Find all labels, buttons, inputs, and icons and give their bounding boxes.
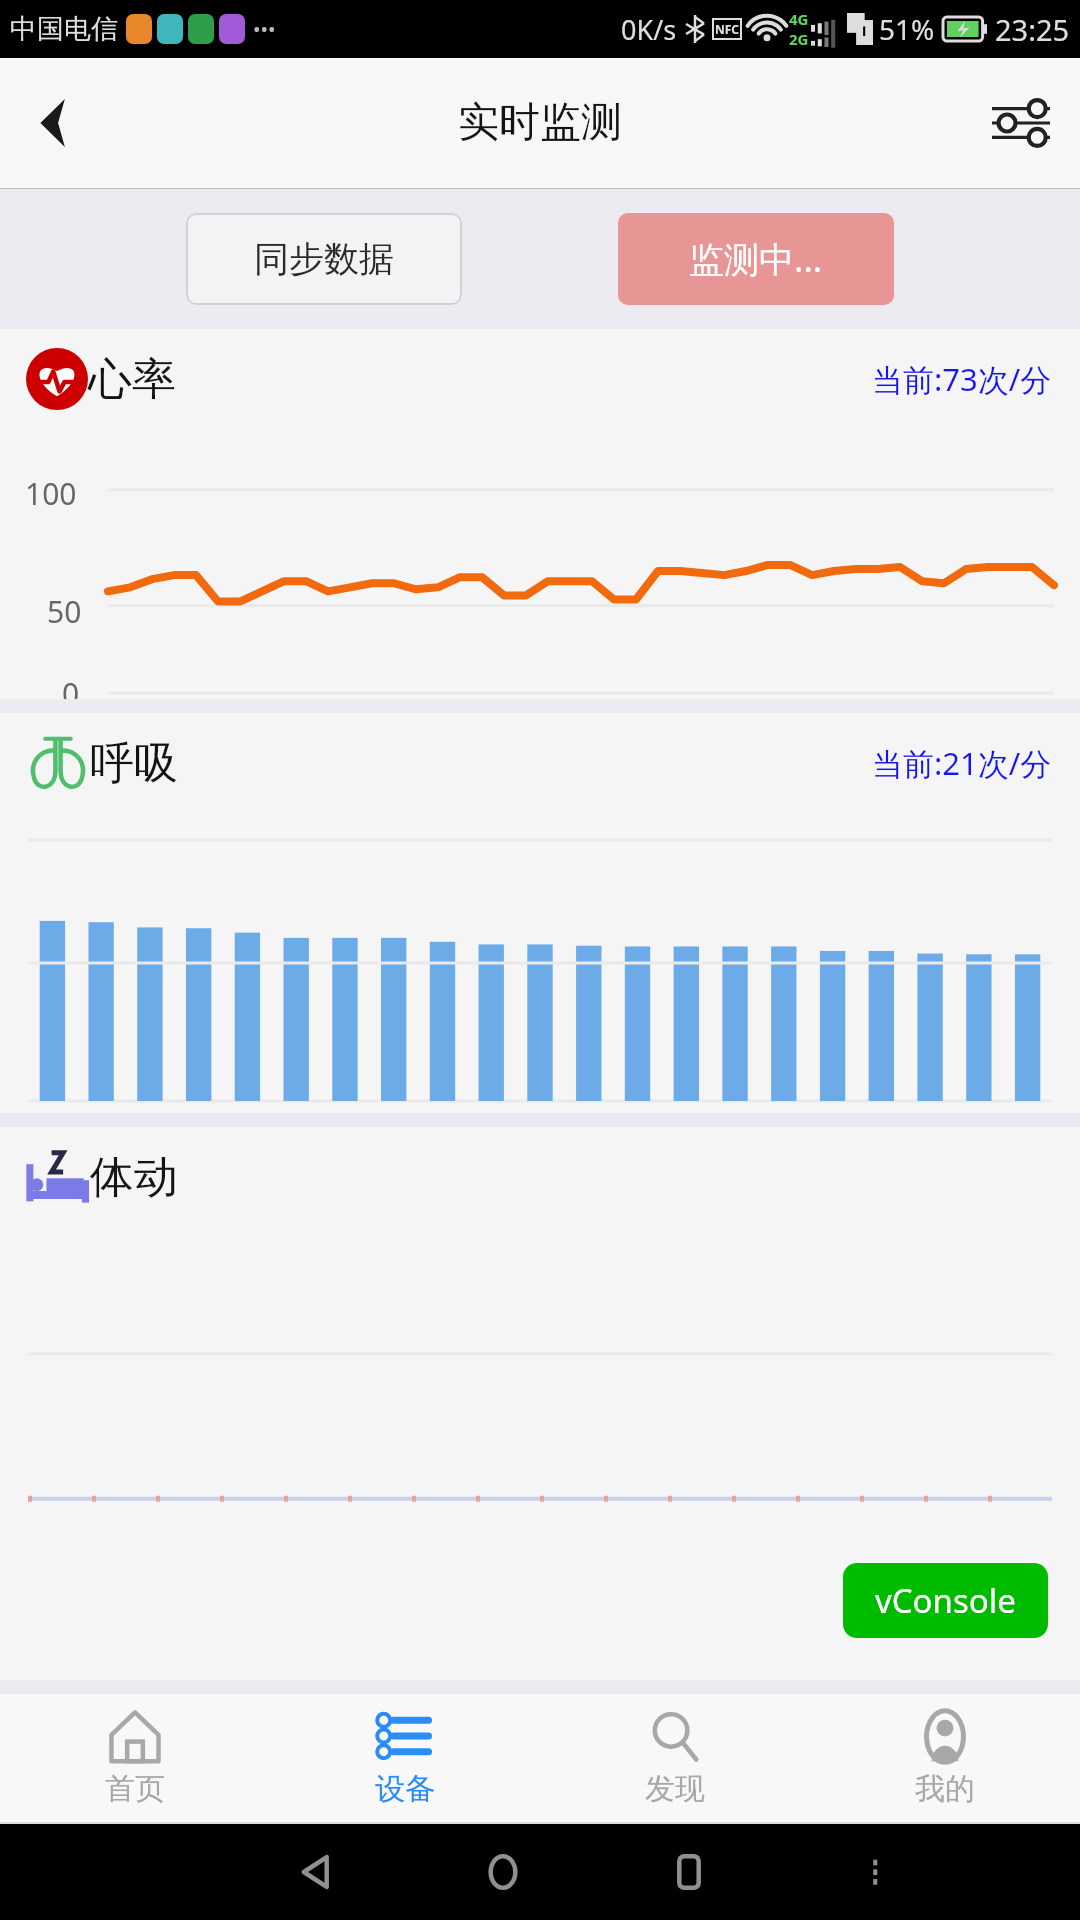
staticText: 实时监测 (458, 97, 622, 149)
staticText: 23:25 (995, 10, 1070, 49)
staticText: NFC (715, 21, 740, 37)
staticText: 监测中... (689, 235, 823, 283)
staticText: 2G (789, 29, 809, 49)
staticText: 当前:73次/分 (872, 358, 1052, 400)
button[interactable]: 首页 (0, 1694, 270, 1822)
button[interactable]: 监测中... (618, 213, 894, 305)
button[interactable]: Recents (596, 1824, 782, 1920)
button[interactable]: Home (410, 1824, 596, 1920)
staticText: 体动 (90, 1150, 178, 1205)
staticText: vConsole (875, 1578, 1016, 1623)
staticText: 100 (25, 473, 77, 514)
staticText: 心率 (88, 352, 176, 407)
staticText: 51% (879, 10, 935, 48)
staticText: 设备 (375, 1770, 435, 1808)
button[interactable]: Back (14, 83, 94, 163)
button[interactable]: 我的 (810, 1694, 1080, 1822)
staticText: 呼吸 (90, 736, 178, 791)
staticText: 4G (789, 9, 809, 29)
staticText: 0 (62, 673, 80, 714)
staticText: 0K/s (621, 11, 677, 48)
staticText: ••• (253, 16, 276, 43)
staticText: 同步数据 (254, 237, 394, 281)
button[interactable]: 发现 (540, 1694, 810, 1822)
button[interactable]: Settings (976, 78, 1066, 168)
button[interactable]: More options (782, 1824, 968, 1920)
staticText: 发现 (645, 1770, 705, 1808)
button[interactable]: Back (224, 1824, 410, 1920)
staticText: 50 (47, 591, 82, 632)
staticText: 中国电信 (10, 12, 118, 46)
button[interactable]: 设备 (270, 1694, 540, 1822)
staticText: 首页 (105, 1770, 165, 1808)
button[interactable]: 同步数据 (186, 213, 462, 305)
staticText: 当前:21次/分 (872, 742, 1052, 784)
staticText: 我的 (915, 1770, 975, 1808)
button[interactable]: vConsole (843, 1563, 1048, 1638)
